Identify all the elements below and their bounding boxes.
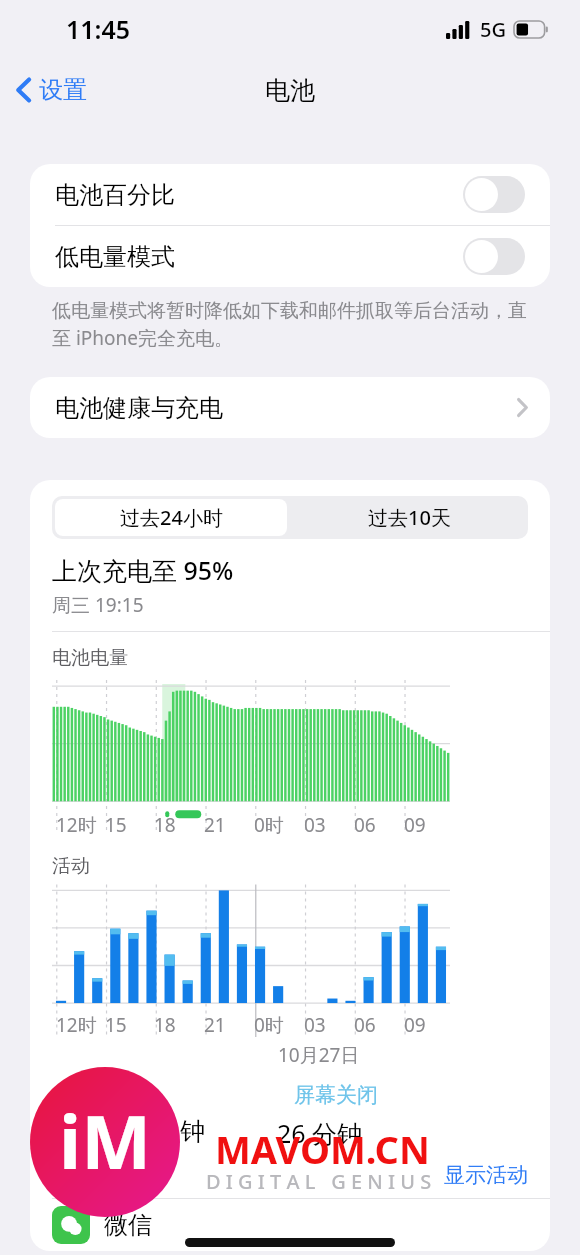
staticText: 09 (404, 1012, 426, 1038)
button[interactable]: 微信 (30, 1199, 550, 1251)
staticText: 10月27日 (278, 1042, 360, 1068)
button[interactable]: 低电量模式 (30, 226, 550, 287)
staticText: 周三 19:15 (52, 592, 144, 618)
staticText: 0时 (254, 812, 284, 838)
staticText: MAVOM.CN (215, 1123, 430, 1175)
staticText: 11:45 (66, 12, 131, 46)
button[interactable]: 电池百分比 (30, 164, 550, 225)
staticText: 5G (480, 16, 506, 43)
staticText: 钟 (180, 1116, 205, 1147)
button[interactable]: 过去24小时 (55, 499, 287, 536)
staticText: iM (59, 1090, 151, 1191)
staticText: 过去10天 (368, 504, 451, 531)
staticText: 09 (404, 812, 426, 838)
button[interactable]: 设置 (0, 69, 99, 111)
button[interactable]: 电池健康与充电 (30, 377, 550, 438)
staticText: 18 (154, 812, 176, 838)
staticText: 06 (354, 1012, 376, 1038)
staticText: 21 (204, 812, 226, 838)
staticText: 微信 (104, 1210, 152, 1240)
staticText: D I G I T A L G E N I U S (206, 1168, 432, 1195)
staticText: 低电量模式 (55, 242, 175, 272)
staticText: 06 (354, 812, 376, 838)
staticText: 21 (204, 1012, 226, 1038)
staticText: 15 (105, 812, 127, 838)
staticText: 上次充电至 95% (52, 553, 234, 587)
staticText: 26 分钟 (277, 1116, 363, 1150)
staticText: 显示活动 (444, 1162, 528, 1188)
staticText: 03 (304, 1012, 326, 1038)
staticText: 低电量模式将暂时降低如下载和邮件抓取等后台活动，直至 iPhone完全充电。 (52, 299, 538, 351)
staticText: 电池百分比 (55, 180, 175, 210)
staticText: 过去24小时 (120, 504, 223, 531)
button[interactable]: 过去10天 (290, 496, 528, 539)
staticText: 12时 (56, 1012, 97, 1038)
staticText: 03 (304, 812, 326, 838)
staticText: 0时 (254, 1012, 284, 1038)
staticText: 15 (105, 1012, 127, 1038)
staticText: 活动 (52, 854, 90, 878)
staticText: 18 (154, 1012, 176, 1038)
staticText: 电池健康与充电 (55, 393, 223, 423)
staticText: 设置 (39, 75, 87, 105)
staticText: 12时 (56, 812, 97, 838)
button[interactable]: 显示活动 (444, 1160, 550, 1192)
staticText: 电池电量 (52, 646, 128, 670)
staticText: 屏幕关闭 (294, 1082, 378, 1108)
staticText: 电池 (265, 75, 315, 106)
